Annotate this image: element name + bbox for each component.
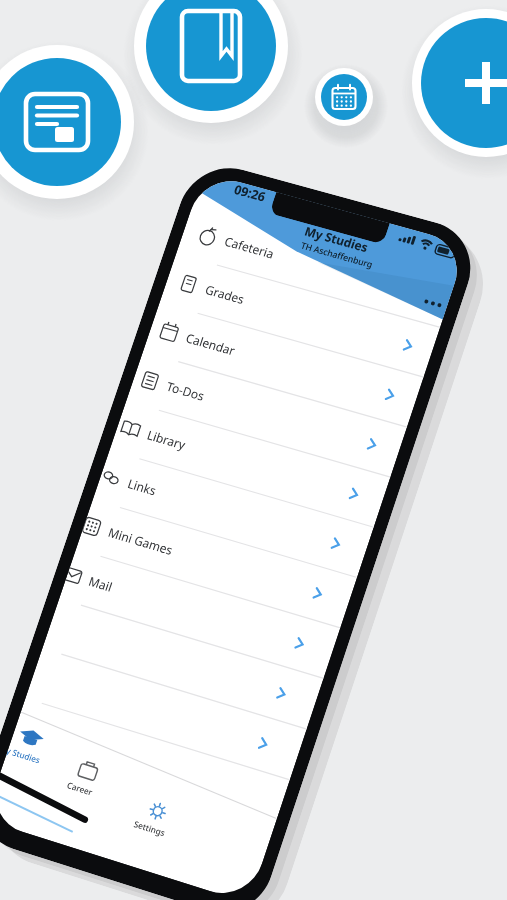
button[interactable]: Mail — [59, 549, 340, 679]
button[interactable]: Links — [93, 451, 373, 578]
staticText: Library — [145, 427, 187, 453]
staticText: Mail — [86, 573, 115, 596]
button[interactable]: Career — [36, 769, 124, 809]
staticText: Calendar — [184, 330, 237, 359]
staticText: Links — [125, 475, 159, 499]
button[interactable]: Settings — [106, 808, 194, 849]
button[interactable] — [25, 649, 307, 780]
staticText: To-Dos — [164, 378, 207, 405]
staticText: My Studies — [6, 745, 42, 766]
button[interactable]: Calendar — [143, 303, 423, 428]
button[interactable] — [42, 599, 323, 730]
staticText: Settings — [132, 818, 167, 839]
button[interactable]: My Studies — [5, 743, 63, 775]
button[interactable]: Cafeteria — [176, 205, 456, 328]
staticText: My Studies — [302, 223, 370, 256]
button[interactable]: Library — [109, 401, 390, 528]
staticText: TH Aschaffenburg — [300, 239, 375, 270]
button[interactable]: To-Dos — [126, 352, 407, 478]
staticText: Grades — [203, 281, 246, 308]
staticText: 09:26 — [232, 181, 268, 206]
staticText: Cafeteria — [222, 233, 277, 263]
staticText: Mini Games — [106, 524, 175, 559]
button[interactable]: Mini Games — [76, 500, 357, 628]
staticText: Career — [65, 779, 95, 799]
button[interactable]: Grades — [159, 254, 440, 378]
